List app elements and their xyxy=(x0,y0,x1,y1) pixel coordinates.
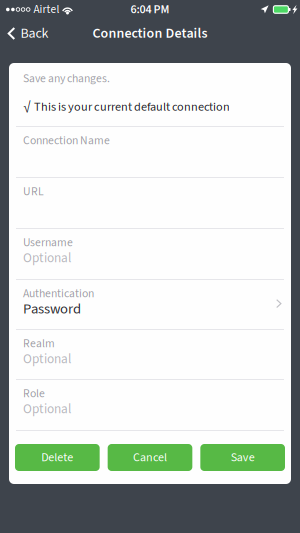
staticText: Connection Details xyxy=(92,23,207,43)
button[interactable]: Delete xyxy=(15,444,100,471)
button[interactable]: Back xyxy=(0,21,62,46)
staticText: URL xyxy=(23,183,44,200)
button[interactable]: Save xyxy=(200,444,285,471)
staticText: Realm xyxy=(23,335,55,352)
staticText: Optional xyxy=(23,248,71,267)
staticText: Username xyxy=(23,234,73,251)
staticText: √ xyxy=(23,97,30,116)
staticText: Optional xyxy=(23,349,71,368)
staticText: 6:04 PM xyxy=(130,1,169,18)
button[interactable]: Cancel xyxy=(108,444,192,471)
staticText: Role xyxy=(23,385,45,402)
staticText: Delete xyxy=(41,449,73,466)
staticText: Optional xyxy=(23,399,71,418)
staticText: Back xyxy=(20,23,48,43)
staticText: Cancel xyxy=(133,449,167,466)
staticText: Authentication xyxy=(23,285,94,302)
staticText: Save xyxy=(231,449,255,466)
staticText: This is your current default connection xyxy=(34,98,230,116)
staticText: Password xyxy=(23,299,81,319)
staticText: Connection Name xyxy=(23,132,110,149)
staticText: Save any changes. xyxy=(23,70,110,87)
button[interactable]: Authentication xyxy=(9,280,291,329)
staticText: Airtel xyxy=(33,1,59,17)
